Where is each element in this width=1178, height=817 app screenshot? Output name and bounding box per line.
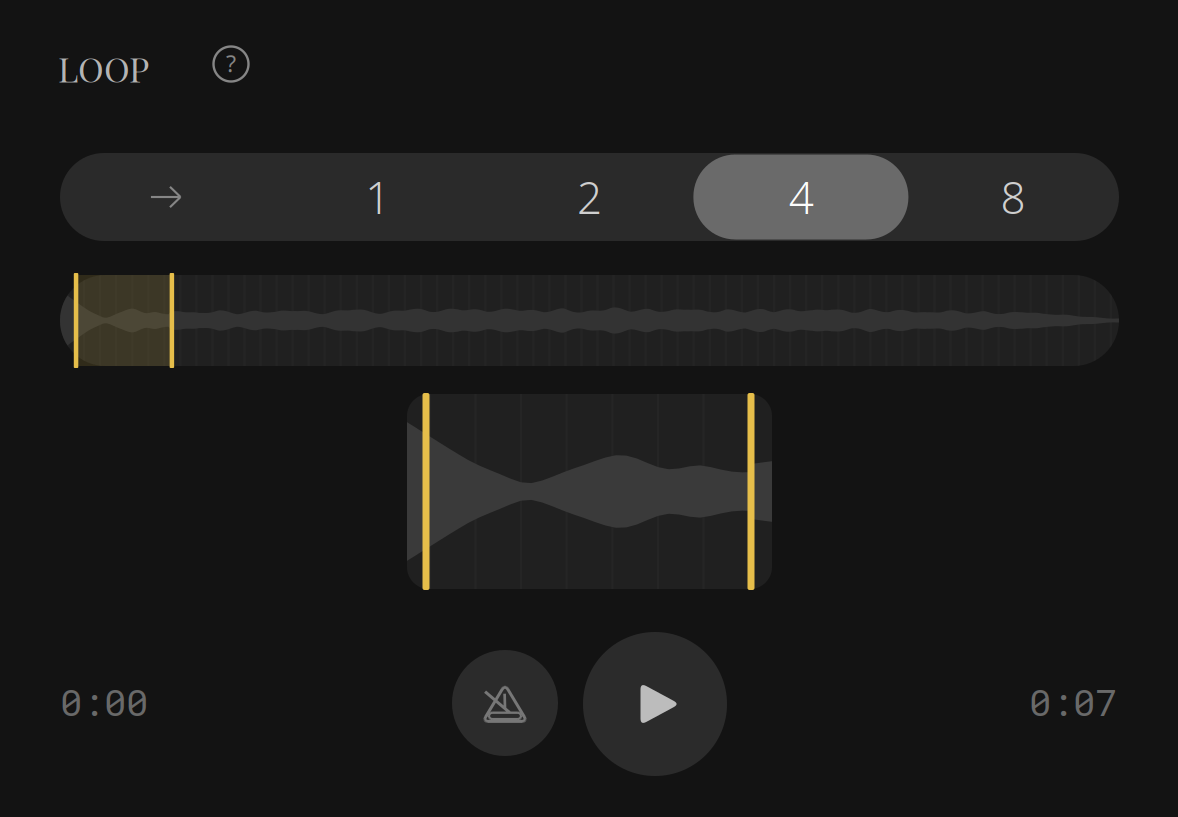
staticText: 1 bbox=[365, 167, 390, 227]
button[interactable]: 1 bbox=[272, 153, 484, 241]
staticText: 0:00 bbox=[60, 677, 148, 726]
button[interactable]: 4 bbox=[695, 153, 907, 241]
staticText: 0:07 bbox=[1029, 677, 1117, 726]
button[interactable]: Play bbox=[583, 632, 727, 776]
staticText: ? bbox=[226, 47, 236, 79]
staticText: 8 bbox=[1001, 167, 1026, 227]
staticText: 2 bbox=[577, 167, 602, 227]
staticText: 4 bbox=[789, 167, 814, 227]
button[interactable]: Metronome bbox=[452, 650, 558, 756]
button[interactable]: Automatic loop length bbox=[60, 153, 272, 241]
staticText: LOOP bbox=[58, 45, 149, 91]
button[interactable]: 8 bbox=[907, 153, 1119, 241]
button[interactable]: 2 bbox=[484, 153, 695, 241]
button[interactable]: Help bbox=[202, 35, 260, 93]
